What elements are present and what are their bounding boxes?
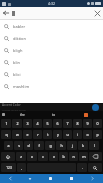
button[interactable]: 0: [93, 119, 102, 128]
staticText: u: [66, 132, 69, 137]
staticText: 1: [5, 121, 8, 126]
staticText: t: [47, 132, 49, 137]
staticText: blin: [13, 60, 20, 65]
staticText: 5: [46, 121, 49, 126]
button[interactable]: 3: [23, 119, 32, 128]
button[interactable]: [70, 111, 102, 118]
staticText: Accent Color: [2, 103, 21, 107]
staticText: k: [82, 143, 84, 148]
button[interactable]: w: [12, 130, 22, 139]
button[interactable]: r: [33, 130, 42, 139]
button[interactable]: Home: [40, 174, 61, 183]
button[interactable]: f: [34, 141, 44, 150]
button[interactable]: 7: [63, 119, 72, 128]
staticText: .: [82, 165, 83, 170]
button[interactable]: j: [67, 141, 77, 150]
staticText: mashlim: [13, 84, 30, 89]
staticText: babler: [13, 24, 26, 29]
button[interactable]: Back: [0, 174, 20, 183]
button[interactable]: to: [38, 111, 70, 118]
button[interactable]: 8: [73, 119, 82, 128]
button[interactable]: v: [49, 152, 58, 161]
staticText: blici: [13, 72, 21, 77]
button[interactable]: t: [43, 130, 52, 139]
staticText: the: [20, 113, 25, 117]
button[interactable]: q: [1, 130, 11, 139]
staticText: bligh: [13, 48, 23, 53]
button[interactable]: Backspace: [89, 152, 102, 161]
button[interactable]: o: [83, 130, 92, 139]
staticText: 0: [96, 121, 99, 126]
staticText: 2: [16, 121, 19, 126]
staticText: 123: [6, 166, 12, 170]
staticText: 6: [56, 121, 59, 126]
button[interactable]: l: [89, 141, 99, 150]
button[interactable]: mashlim: [0, 80, 103, 92]
button[interactable]: bligh: [0, 44, 103, 56]
button[interactable]: diktion: [0, 32, 103, 44]
button[interactable]: blici: [0, 68, 103, 80]
button[interactable]: c: [38, 152, 48, 161]
button[interactable]: 4: [33, 119, 42, 128]
button[interactable]: g: [45, 141, 55, 150]
button[interactable]: 1: [1, 119, 11, 128]
staticText: to: [52, 113, 56, 117]
staticText: w: [16, 132, 19, 137]
staticText: i: [77, 132, 78, 137]
button[interactable]: p: [93, 130, 102, 139]
staticText: y: [57, 132, 59, 137]
staticText: j: [72, 143, 73, 148]
button[interactable]: 5: [43, 119, 52, 128]
button[interactable]: 9: [83, 119, 92, 128]
staticText: g: [49, 143, 52, 148]
staticText: 4:32: [48, 1, 55, 6]
button[interactable]: Accent color: [92, 104, 99, 111]
button[interactable]: y: [53, 130, 62, 139]
staticText: diktion: [13, 36, 26, 41]
button[interactable]: Back: [0, 7, 12, 19]
staticText: p: [96, 132, 99, 137]
staticText: q: [5, 132, 8, 137]
button[interactable]: Recents: [61, 174, 82, 183]
staticText: b: [62, 154, 65, 159]
button[interactable]: babler: [0, 20, 103, 32]
button[interactable]: Menu: [82, 174, 103, 183]
staticText: m: [82, 154, 86, 159]
button[interactable]: .: [77, 163, 87, 172]
staticText: f: [38, 143, 40, 148]
button[interactable]: 123: [1, 163, 16, 172]
button[interactable]: s: [14, 141, 23, 150]
button[interactable]: ,: [17, 163, 26, 172]
button[interactable]: Shift: [1, 152, 15, 161]
button[interactable]: Clear: [91, 7, 103, 19]
button[interactable]: Hide keyboard: [20, 174, 40, 183]
button[interactable]: h: [56, 141, 66, 150]
button[interactable]: b: [59, 152, 68, 161]
button[interactable]: d: [24, 141, 33, 150]
button[interactable]: 2: [12, 119, 22, 128]
staticText: z: [20, 154, 22, 159]
staticText: s: [18, 143, 20, 148]
staticText: Choose theme accent: [2, 108, 27, 111]
button[interactable]: e: [23, 130, 32, 139]
button[interactable]: 6: [53, 119, 62, 128]
button[interactable]: m: [79, 152, 88, 161]
staticText: r: [37, 132, 39, 137]
staticText: c: [42, 154, 44, 159]
button[interactable]: blin: [0, 56, 103, 68]
staticText: h: [60, 143, 63, 148]
button[interactable]: x: [27, 152, 37, 161]
button[interactable]: z: [16, 152, 26, 161]
button[interactable]: Search: [88, 163, 102, 172]
button[interactable]: Voice input: [1, 111, 6, 118]
button[interactable]: n: [69, 152, 78, 161]
button[interactable]: i: [73, 130, 82, 139]
button[interactable]: the: [6, 111, 38, 118]
button[interactable]: k: [78, 141, 88, 150]
staticText: l: [94, 143, 95, 148]
button[interactable]: a: [4, 141, 13, 150]
button[interactable]: u: [63, 130, 72, 139]
staticText: 8: [76, 121, 79, 126]
staticText: 7: [66, 121, 69, 126]
